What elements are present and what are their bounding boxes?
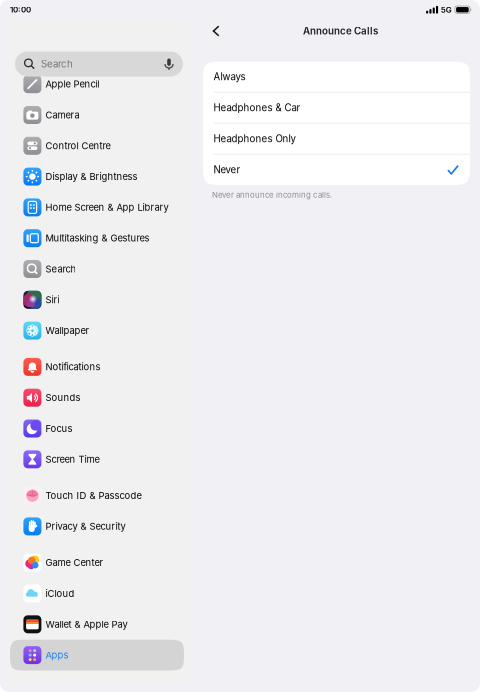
staticText: Multitasking & Gestures [45, 232, 149, 244]
button[interactable]: Camera [10, 100, 184, 130]
staticText: Focus [45, 423, 72, 434]
staticText: iCloud [45, 588, 74, 599]
staticText: 5G [441, 5, 452, 15]
staticText: Announce Calls [303, 25, 378, 37]
staticText: Never [213, 164, 240, 176]
button[interactable]: Wallpaper [10, 315, 184, 346]
button[interactable]: Home Screen & App Library [10, 192, 184, 223]
button[interactable]: Wallet & Apple Pay [10, 609, 184, 640]
staticText: Sounds [45, 392, 80, 403]
staticText: Always [213, 71, 245, 82]
button[interactable]: Focus [10, 413, 184, 444]
staticText: Search [45, 263, 76, 275]
staticText: Touch ID & Passcode [45, 490, 141, 501]
staticText: Wallet & Apple Pay [45, 619, 127, 630]
button[interactable]: Notifications [10, 351, 184, 382]
staticText: Screen Time [45, 454, 99, 465]
button[interactable]: Sounds [10, 382, 184, 413]
button[interactable]: Control Centre [10, 130, 184, 161]
button[interactable]: Back [203, 17, 230, 44]
button[interactable]: Always [203, 61, 470, 92]
staticText: Siri [45, 294, 59, 305]
staticText: Display & Brightness [45, 171, 137, 182]
staticText: Headphones & Car [213, 102, 300, 113]
button[interactable]: Headphones Only [203, 123, 470, 154]
button[interactable]: Display & Brightness [10, 161, 184, 192]
button[interactable]: Game Center [10, 547, 184, 578]
staticText: Home Screen & App Library [45, 202, 168, 213]
staticText: Control Centre [45, 140, 110, 151]
staticText: Apps [45, 649, 68, 661]
button[interactable]: Screen Time [10, 444, 184, 475]
staticText: Never announce incoming calls. [212, 190, 332, 199]
button[interactable]: Apple Pencil [10, 69, 184, 100]
staticText: Camera [45, 109, 79, 121]
button[interactable]: Apps [10, 640, 184, 670]
button[interactable]: Multitasking & Gestures [10, 223, 184, 254]
button[interactable]: Headphones & Car [203, 92, 470, 123]
button[interactable]: iCloud [10, 578, 184, 609]
button[interactable]: Never [203, 154, 470, 185]
button[interactable]: Siri [10, 284, 184, 315]
button[interactable]: Touch ID & Passcode [10, 480, 184, 511]
staticText: Notifications [45, 361, 100, 373]
staticText: Wallpaper [45, 325, 89, 336]
button[interactable]: Privacy & Security [10, 511, 184, 542]
button[interactable]: Search [10, 254, 184, 284]
staticText: Search [41, 58, 73, 70]
staticText: Headphones Only [213, 133, 295, 144]
staticText: 10:00 [10, 5, 31, 14]
staticText: Game Center [45, 557, 103, 568]
staticText: Privacy & Security [45, 521, 125, 532]
staticText: Apple Pencil [45, 78, 99, 90]
